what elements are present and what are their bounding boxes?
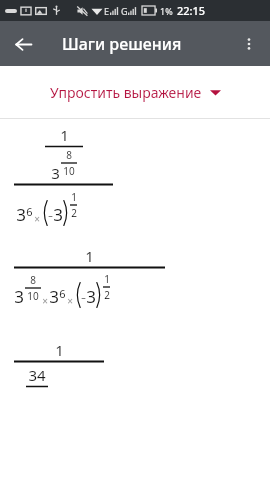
staticText: G: [121, 5, 128, 17]
staticText: 3: [51, 163, 60, 183]
staticText: 3: [14, 285, 24, 308]
staticText: –: [81, 291, 86, 303]
staticText: 8: [66, 148, 72, 162]
staticText: Упростить выражение: [50, 83, 202, 102]
staticText: 1: [104, 272, 110, 286]
staticText: 3: [49, 285, 59, 308]
staticText: 2: [71, 206, 77, 220]
staticText: 8: [30, 273, 36, 287]
staticText: 22:15: [177, 3, 206, 18]
staticText: 10: [63, 164, 75, 178]
staticText: 1: [85, 246, 94, 266]
staticText: 34: [28, 365, 46, 385]
staticText: –: [48, 209, 53, 221]
staticText: 10: [27, 289, 39, 303]
staticText: ×: [34, 212, 40, 226]
button[interactable]: Упростить выражение: [0, 66, 270, 118]
staticText: 1: [60, 125, 69, 145]
staticText: ×: [42, 294, 48, 308]
staticText: 3: [53, 203, 63, 226]
staticText: 6: [26, 204, 33, 219]
staticText: 1%: [160, 5, 173, 17]
staticText: E: [104, 5, 110, 17]
staticText: ×: [67, 294, 73, 308]
staticText: 6: [59, 286, 66, 301]
staticText: Шаги решения: [62, 33, 182, 55]
staticText: 3: [86, 285, 96, 308]
button[interactable]: Back: [6, 27, 40, 61]
staticText: 3: [16, 203, 26, 226]
staticText: 2: [104, 288, 110, 302]
staticText: 1: [55, 340, 64, 360]
button[interactable]: More options: [232, 27, 266, 61]
staticText: 1: [71, 190, 77, 204]
